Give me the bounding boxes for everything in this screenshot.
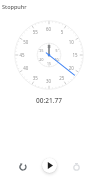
staticText: Stoppuhr xyxy=(2,3,27,10)
staticText: 00:21.77 xyxy=(36,96,62,105)
button[interactable]: Zurücksetzen xyxy=(12,156,33,177)
button[interactable]: Start xyxy=(42,158,57,173)
button[interactable]: Runde xyxy=(66,156,87,177)
